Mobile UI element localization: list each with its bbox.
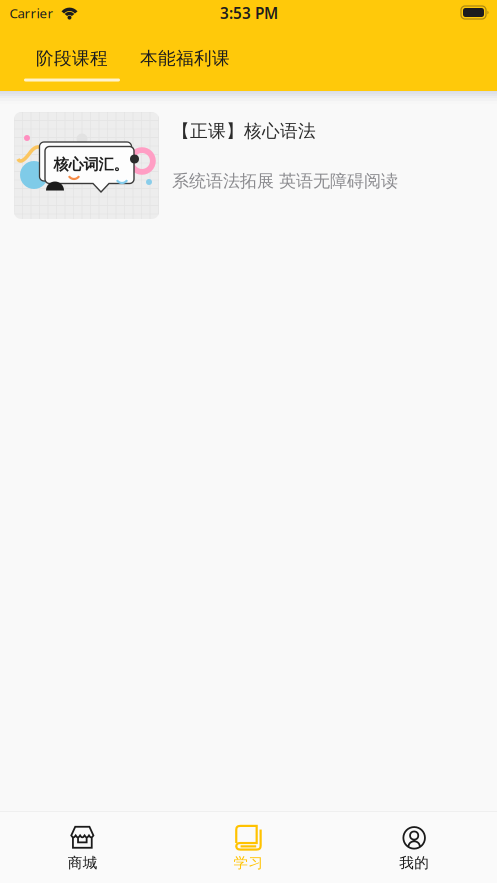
staticText: 3:53 PM	[220, 3, 278, 23]
staticText: 学习	[233, 854, 263, 872]
staticText: 我的	[399, 854, 429, 872]
button[interactable]: 核心词汇。	[0, 91, 497, 219]
button[interactable]: 商城	[0, 814, 166, 881]
staticText: 核心词汇。	[53, 155, 128, 174]
staticText: 商城	[68, 854, 98, 872]
staticText: 阶段课程	[36, 47, 108, 70]
button[interactable]: 阶段课程	[12, 33, 132, 81]
button[interactable]: 本能福利课	[128, 33, 242, 81]
staticText: 系统语法拓展 英语无障碍阅读	[172, 170, 398, 192]
staticText: 本能福利课	[140, 47, 230, 70]
button[interactable]: 我的	[331, 814, 497, 881]
staticText: 【正课】核心语法	[172, 120, 316, 142]
button[interactable]: 学习	[166, 814, 331, 881]
staticText: Carrier	[9, 4, 53, 22]
